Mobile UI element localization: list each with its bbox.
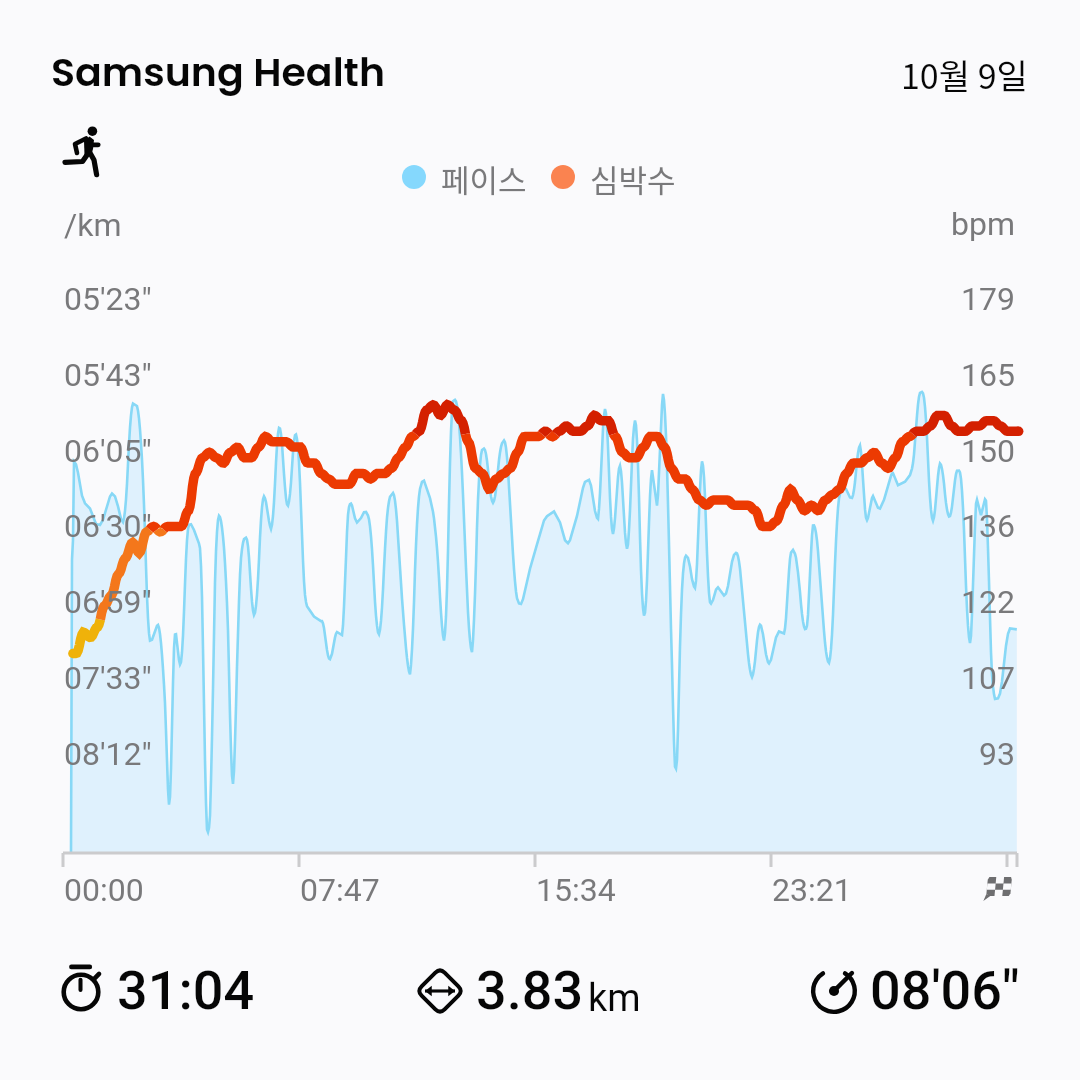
button[interactable] bbox=[0, 0, 1080, 1080]
